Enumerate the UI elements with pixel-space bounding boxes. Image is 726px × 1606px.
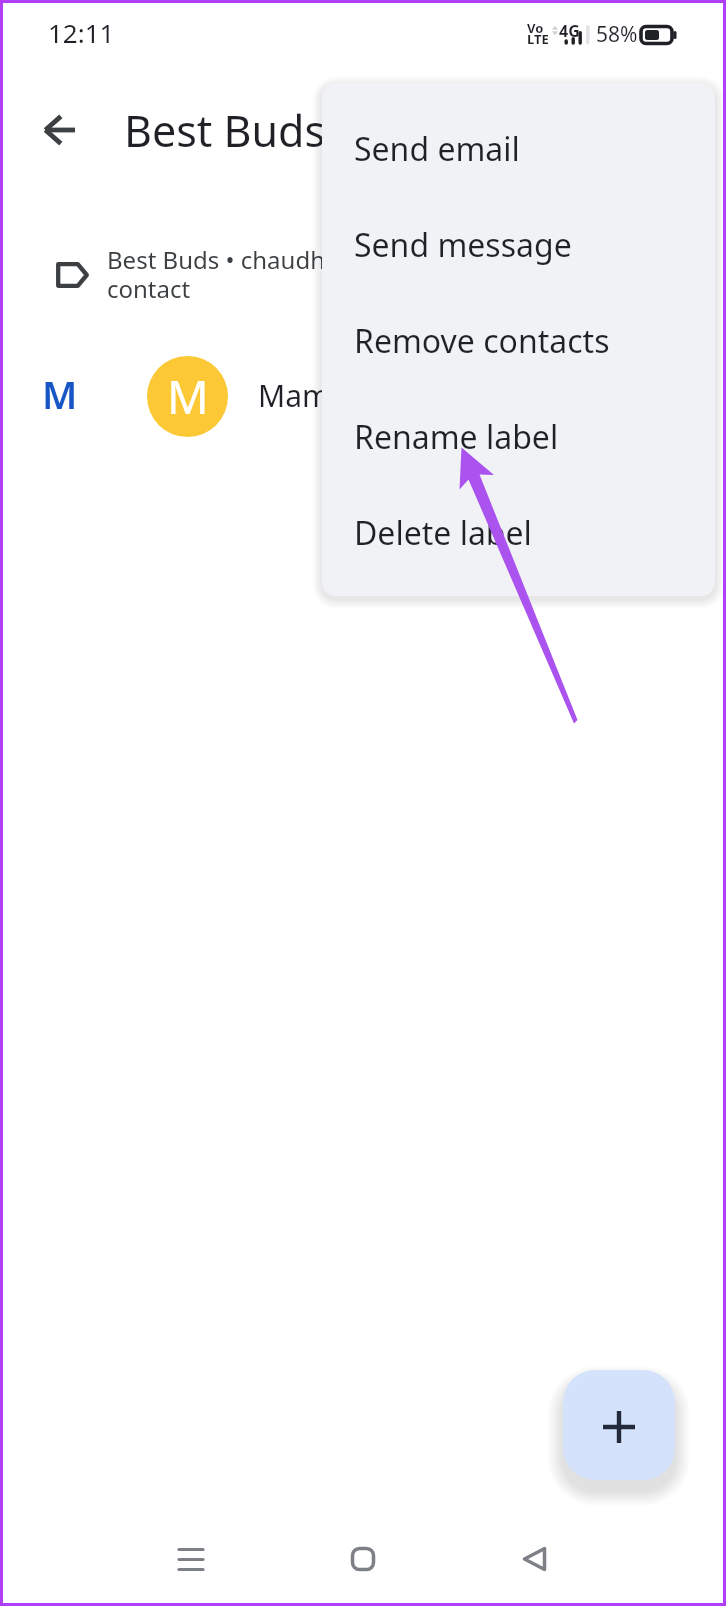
staticText: Remove contacts [354,319,610,363]
staticText: 58% [596,20,638,49]
button[interactable]: Add contact [563,1370,675,1480]
button[interactable]: M [0,340,726,452]
staticText: M [42,368,78,420]
staticText: Delete label [354,511,532,555]
button[interactable]: Send email [322,101,715,197]
button[interactable]: Delete label [322,485,715,581]
button[interactable]: Send message [322,197,715,293]
button[interactable]: Best Buds • chaudhary contact [0,232,726,314]
staticText: LTE [527,30,549,48]
staticText: Rename label [354,415,559,459]
button[interactable]: Back [474,1519,594,1599]
button[interactable]: Back [24,95,94,165]
button[interactable]: Home [303,1519,423,1599]
staticText: 4G [559,20,580,42]
staticText: Best Buds • chaudhary contact [107,243,361,305]
staticText: Send email [354,127,520,171]
staticText: Send message [354,223,572,267]
staticText: 12:11 [48,15,115,50]
staticText: Mamta [258,375,358,416]
staticText: M [167,365,209,428]
staticText: Vo [527,19,544,37]
button[interactable]: Recent apps [131,1519,251,1599]
button[interactable]: Remove contacts [322,293,715,389]
button[interactable]: Rename label [322,389,715,485]
staticText: Best Buds [124,101,326,160]
